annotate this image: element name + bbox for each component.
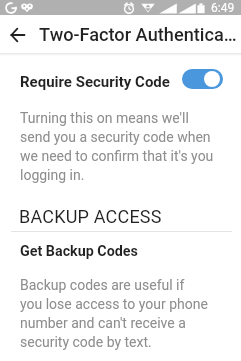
staticText: Turning this on means we'll send you a s… (20, 110, 217, 183)
staticText: Backup codes are useful if you lose acce… (20, 277, 208, 350)
staticText: Two-Factor Authentica… (39, 24, 237, 45)
button[interactable]: Back (4, 21, 31, 48)
button[interactable]: Get Backup Codes (0, 243, 241, 260)
staticText: 6:49 (211, 1, 235, 15)
staticText: Require Security Code (20, 73, 170, 91)
staticText: BACKUP ACCESS (19, 206, 162, 227)
button[interactable]: Require Security Code toggle (182, 69, 223, 89)
button[interactable]: Require Security Code (0, 69, 241, 95)
